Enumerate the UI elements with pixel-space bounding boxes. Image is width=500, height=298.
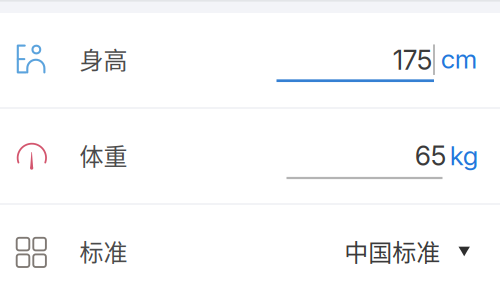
staticText: 175 — [393, 44, 433, 76]
staticText: 体重 — [79, 138, 127, 172]
staticText: kg — [450, 140, 479, 171]
staticText: 65 — [415, 140, 447, 172]
button[interactable]: 身高 — [0, 13, 500, 108]
staticText: cm — [441, 43, 477, 75]
button[interactable]: 标准 — [0, 204, 500, 298]
button[interactable]: 体重 — [0, 108, 500, 204]
staticText: 标准 — [79, 234, 127, 268]
staticText: 中国标准 — [344, 234, 440, 268]
staticText: 身高 — [79, 41, 127, 76]
